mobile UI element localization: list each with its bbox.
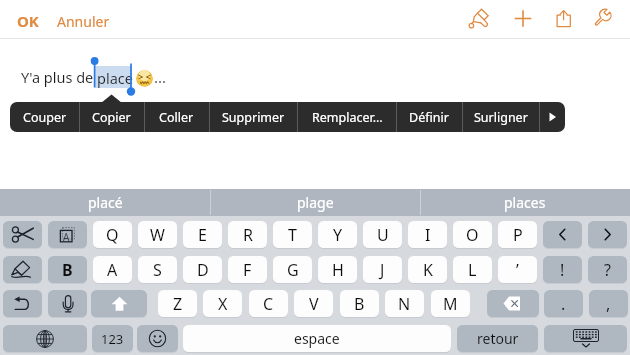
staticText: B: [62, 259, 73, 281]
button[interactable]: Highlight: [3, 256, 42, 283]
button[interactable]: Annuler: [57, 12, 110, 31]
button[interactable]: retour: [457, 325, 538, 352]
staticText: Annuler: [57, 12, 110, 31]
button[interactable]: Bold: [48, 256, 87, 283]
button[interactable]: V: [294, 290, 333, 317]
button[interactable]: Copier: [79, 102, 144, 132]
staticText: H: [332, 259, 344, 281]
button[interactable]: G: [273, 256, 312, 283]
button[interactable]: plage: [210, 189, 420, 216]
staticText: Y: [333, 224, 343, 246]
button[interactable]: ’: [498, 256, 537, 283]
button[interactable]: F: [228, 256, 267, 283]
staticText: ...: [154, 67, 167, 87]
button[interactable]: E: [183, 221, 222, 248]
button[interactable]: I: [408, 221, 447, 248]
button[interactable]: B: [340, 290, 379, 317]
button[interactable]: OK: [17, 11, 39, 31]
button[interactable]: Shift: [91, 290, 147, 317]
button[interactable]: !: [543, 256, 582, 283]
button[interactable]: T: [273, 221, 312, 248]
button[interactable]: X: [203, 290, 242, 317]
staticText: Surligner: [474, 109, 528, 126]
staticText: A: [107, 259, 118, 281]
button[interactable]: U: [363, 221, 402, 248]
button[interactable]: K: [408, 256, 447, 283]
button[interactable]: Y: [318, 221, 357, 248]
button[interactable]: Share: [552, 6, 576, 30]
button[interactable]: W: [138, 221, 177, 248]
button[interactable]: H: [318, 256, 357, 283]
staticText: V: [309, 293, 319, 315]
button[interactable]: Undo: [3, 290, 42, 317]
button[interactable]: Add: [511, 6, 535, 30]
staticText: Remplacer…: [312, 109, 383, 126]
staticText: B: [354, 293, 365, 315]
button[interactable]: Settings: [593, 6, 617, 30]
button[interactable]: A: [93, 256, 132, 283]
staticText: J: [380, 259, 385, 281]
staticText: Q: [106, 224, 119, 246]
button[interactable]: espace: [183, 325, 451, 352]
button[interactable]: R: [228, 221, 267, 248]
staticText: R: [243, 224, 253, 246]
staticText: Définir: [409, 109, 449, 126]
button[interactable]: Dictate: [48, 290, 87, 317]
staticText: 123: [101, 330, 124, 348]
button[interactable]: Markup: [468, 6, 492, 30]
staticText: Copier: [92, 109, 131, 126]
staticText: D: [197, 259, 209, 281]
button[interactable]: ?: [588, 256, 627, 283]
staticText: places: [504, 193, 546, 212]
button[interactable]: More: [539, 102, 564, 132]
staticText: Z: [173, 293, 183, 315]
button[interactable]: Définir: [396, 102, 462, 132]
button[interactable]: .: [544, 290, 583, 317]
staticText: place: [97, 68, 133, 88]
button[interactable]: Couper: [10, 102, 79, 132]
button[interactable]: Coller: [144, 102, 208, 132]
staticText: ?: [604, 259, 611, 281]
button[interactable]: Backspace: [487, 290, 539, 317]
button[interactable]: Copy: [48, 221, 87, 248]
button[interactable]: O: [453, 221, 492, 248]
staticText: G: [287, 259, 299, 281]
staticText: Couper: [23, 109, 67, 126]
button[interactable]: D: [183, 256, 222, 283]
button[interactable]: Cut: [3, 221, 42, 248]
button[interactable]: Q: [93, 221, 132, 248]
button[interactable]: places: [420, 189, 630, 216]
staticText: N: [398, 293, 411, 315]
button[interactable]: S: [138, 256, 177, 283]
button[interactable]: P: [498, 221, 537, 248]
button[interactable]: Z: [158, 290, 197, 317]
staticText: M: [443, 293, 458, 315]
button[interactable]: placé: [0, 189, 210, 216]
button[interactable]: N: [385, 290, 424, 317]
staticText: C: [263, 293, 274, 315]
staticText: retour: [477, 329, 519, 348]
button[interactable]: Next: [588, 221, 627, 248]
staticText: ’: [516, 259, 519, 281]
button[interactable]: Change keyboard: [3, 325, 87, 352]
staticText: placé: [88, 193, 123, 212]
button[interactable]: Remplacer…: [297, 102, 397, 132]
staticText: Supprimer: [222, 109, 285, 126]
button[interactable]: Supprimer: [209, 102, 297, 132]
staticText: X: [218, 293, 228, 315]
staticText: I: [425, 224, 431, 246]
staticText: plage: [297, 193, 334, 212]
button[interactable]: L: [453, 256, 492, 283]
button[interactable]: C: [249, 290, 288, 317]
button[interactable]: Emoji: [137, 325, 178, 352]
button[interactable]: M: [431, 290, 470, 317]
button[interactable]: J: [363, 256, 402, 283]
staticText: espace: [294, 329, 340, 348]
button[interactable]: Surligner: [462, 102, 540, 132]
staticText: L: [468, 259, 477, 281]
button[interactable]: Hide keyboard: [544, 325, 627, 352]
staticText: O: [466, 224, 479, 246]
button[interactable]: Previous: [543, 221, 582, 248]
button[interactable]: ,: [589, 290, 628, 317]
button[interactable]: 123: [92, 325, 133, 352]
